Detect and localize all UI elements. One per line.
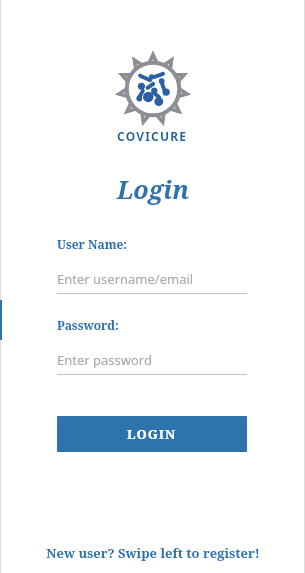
staticText: Login [117,172,189,206]
staticText: User Name: [57,236,127,252]
button[interactable]: New user? Swipe left to register! [0,544,305,573]
button[interactable]: LOGIN [57,416,247,452]
staticText: Enter password [57,351,152,369]
button[interactable]: Enter password [57,351,247,375]
staticText: New user? Swipe left to register! [46,544,260,562]
staticText: LOGIN [127,425,177,443]
other: Covicure logo [116,52,190,126]
staticText: Enter username/email [57,270,194,288]
staticText: Password: [57,317,119,333]
button[interactable]: Enter username/email [57,270,247,294]
staticText: COVICURE [117,128,188,144]
